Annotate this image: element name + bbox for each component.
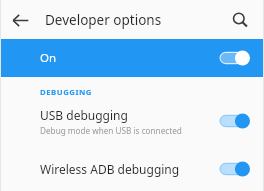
button[interactable]: Back	[6, 6, 34, 34]
staticText: On	[40, 50, 57, 66]
staticText: Developer options	[45, 11, 162, 29]
staticText: DEBUGGING	[40, 87, 92, 98]
staticText: USB debugging	[40, 107, 128, 123]
button[interactable]: Wireless ADB debugging	[0, 152, 264, 186]
button[interactable]: On	[0, 39, 264, 77]
staticText: Debug mode when USB is connected	[40, 125, 182, 136]
button[interactable]: Toggle	[220, 49, 250, 67]
button[interactable]: USB debugging	[0, 102, 264, 140]
button[interactable]: Toggle	[220, 112, 250, 130]
button[interactable]: Toggle	[220, 160, 250, 178]
button[interactable]: Search	[225, 5, 255, 35]
staticText: Wireless ADB debugging	[40, 161, 180, 177]
